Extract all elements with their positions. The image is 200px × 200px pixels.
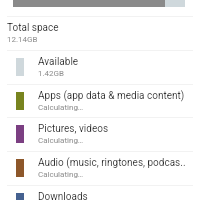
- button[interactable]: Available: [0, 50, 200, 84]
- staticText: Audio (music, ringtones, podcas..: [38, 157, 186, 169]
- staticText: Total space: [7, 22, 59, 34]
- staticText: 1.42GB: [38, 69, 65, 78]
- button[interactable]: Total space: [0, 16, 200, 50]
- button[interactable]: Apps (app data & media content): [0, 84, 200, 117]
- staticText: Calculating…: [38, 103, 84, 112]
- staticText: Downloads: [38, 191, 88, 200]
- button[interactable]: Downloads: [0, 185, 200, 200]
- staticText: Pictures, videos: [38, 123, 109, 135]
- staticText: Calculating…: [38, 170, 84, 179]
- staticText: Calculating…: [38, 136, 84, 145]
- button[interactable]: Audio (music, ringtones, podcas..: [0, 151, 200, 185]
- staticText: Apps (app data & media content): [38, 90, 185, 102]
- staticText: Available: [38, 56, 79, 68]
- button[interactable]: Pictures, videos: [0, 117, 200, 151]
- staticText: 12.14GB: [7, 35, 38, 44]
